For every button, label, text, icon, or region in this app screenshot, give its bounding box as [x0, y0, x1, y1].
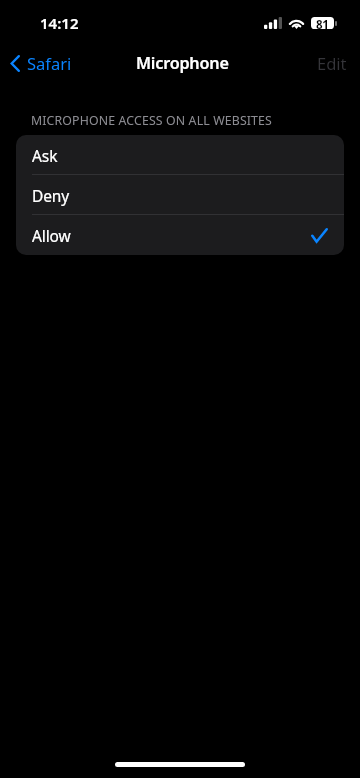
button[interactable]: Allow — [16, 215, 344, 255]
staticText: Safari — [27, 52, 72, 74]
staticText: Ask — [32, 145, 58, 166]
staticText: Deny — [32, 185, 70, 206]
staticText: 81 — [316, 17, 329, 29]
staticText: Allow — [32, 225, 71, 246]
button[interactable]: Deny — [16, 175, 344, 215]
other: Back to Safari — [10, 55, 20, 72]
button[interactable]: Ask — [16, 135, 344, 175]
staticText: MICROPHONE ACCESS ON ALL WEBSITES — [31, 112, 272, 129]
staticText: 14:12 — [40, 13, 79, 33]
staticText: Microphone — [136, 52, 229, 74]
staticText: Edit — [317, 52, 347, 74]
button[interactable]: Edit — [301, 44, 360, 82]
button[interactable]: Back to Safari — [0, 46, 82, 80]
other: Selected — [311, 228, 328, 243]
